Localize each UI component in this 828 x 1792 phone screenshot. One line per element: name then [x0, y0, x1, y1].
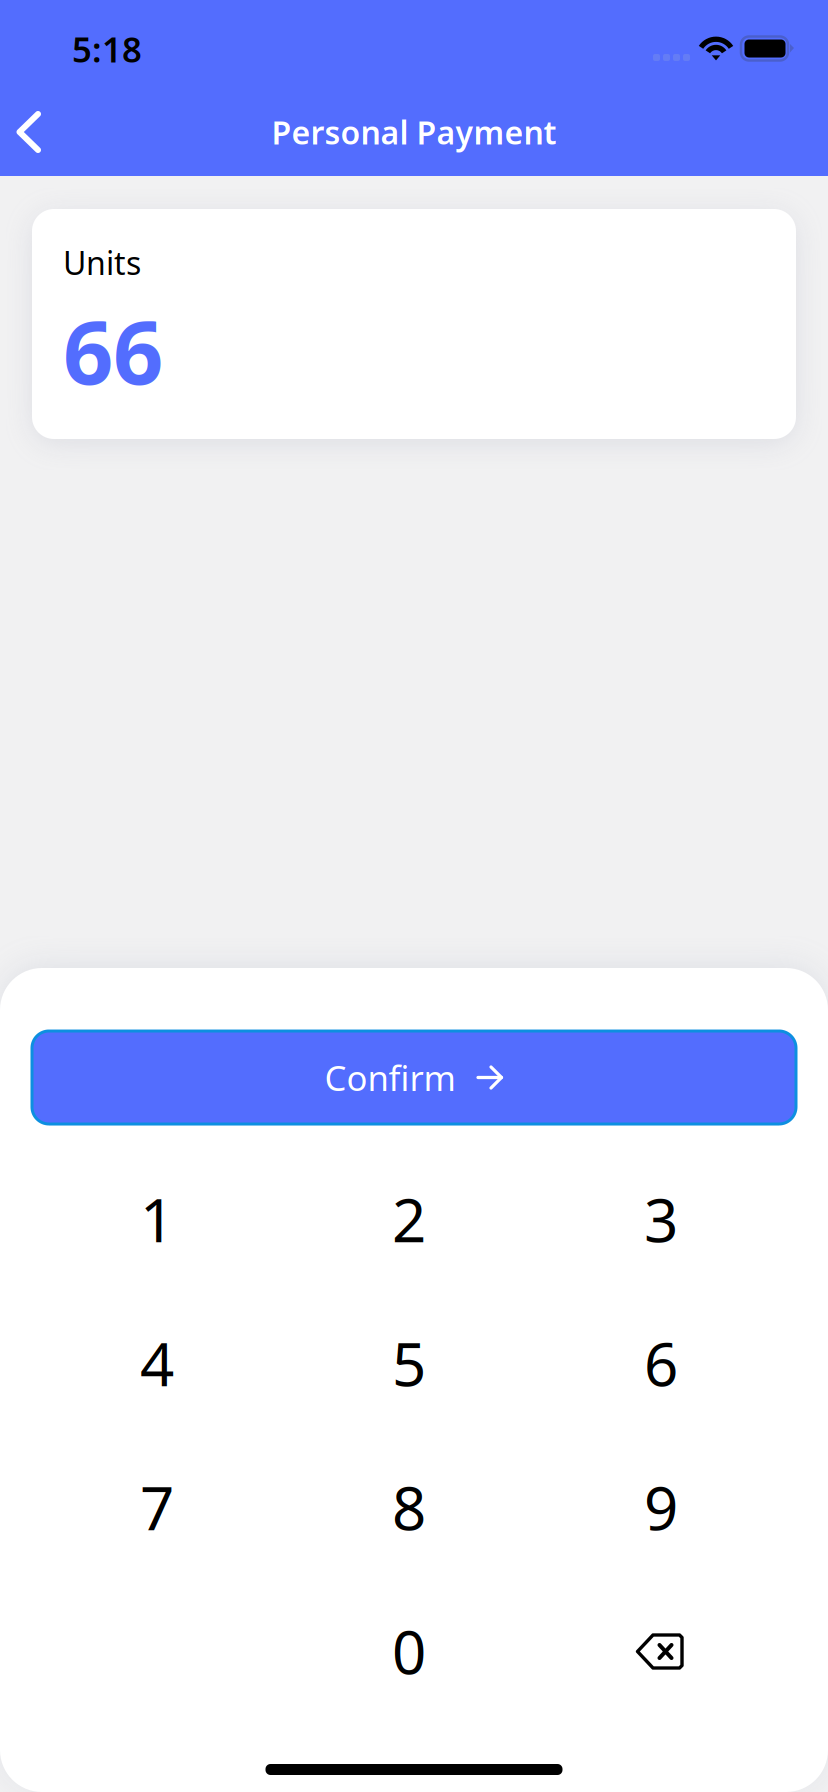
staticText: Personal Payment — [271, 111, 556, 153]
staticText: 4 — [140, 1323, 174, 1403]
staticText: 5:18 — [72, 26, 142, 72]
button[interactable]: Back — [0, 88, 78, 176]
staticText: 9 — [644, 1467, 678, 1547]
button[interactable]: 5 — [283, 1291, 535, 1435]
staticText: 3 — [644, 1179, 678, 1259]
staticText: 7 — [140, 1467, 174, 1547]
staticText: Units — [63, 241, 141, 284]
staticText: 0 — [392, 1611, 426, 1691]
staticText: 2 — [392, 1179, 426, 1259]
button[interactable]: Confirm — [32, 1031, 796, 1124]
staticText: Confirm — [324, 1054, 455, 1100]
button[interactable]: Delete — [535, 1579, 787, 1723]
staticText: 5 — [392, 1323, 426, 1403]
button[interactable]: 9 — [535, 1435, 787, 1579]
button[interactable]: 0 — [283, 1579, 535, 1723]
staticText: 8 — [392, 1467, 426, 1547]
button[interactable]: 6 — [535, 1291, 787, 1435]
button[interactable]: 7 — [31, 1435, 283, 1579]
button[interactable]: 8 — [283, 1435, 535, 1579]
button[interactable]: 1 — [31, 1147, 283, 1291]
button[interactable]: 2 — [283, 1147, 535, 1291]
staticText: 6 — [644, 1323, 678, 1403]
button[interactable]: 4 — [31, 1291, 283, 1435]
staticText: 1 — [140, 1179, 174, 1259]
button[interactable]: 3 — [535, 1147, 787, 1291]
staticText: 66 — [63, 292, 163, 409]
